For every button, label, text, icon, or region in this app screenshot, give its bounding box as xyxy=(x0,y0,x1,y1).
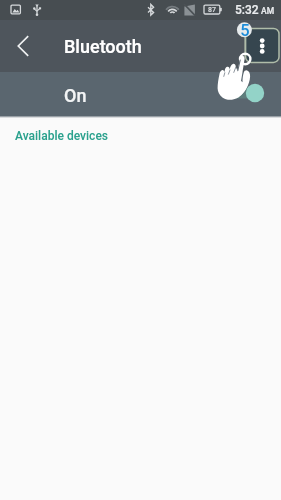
staticText: AM xyxy=(261,6,275,16)
staticText: On xyxy=(64,85,87,106)
staticText: 5 xyxy=(239,21,251,40)
button[interactable]: Back xyxy=(0,23,46,69)
staticText: Available devices xyxy=(15,129,109,143)
button[interactable]: More options xyxy=(243,27,281,65)
staticText: 87 xyxy=(206,6,218,14)
button[interactable]: On xyxy=(0,72,281,118)
staticText: 5:32 xyxy=(235,3,259,17)
staticText: Bluetooth xyxy=(64,36,142,57)
